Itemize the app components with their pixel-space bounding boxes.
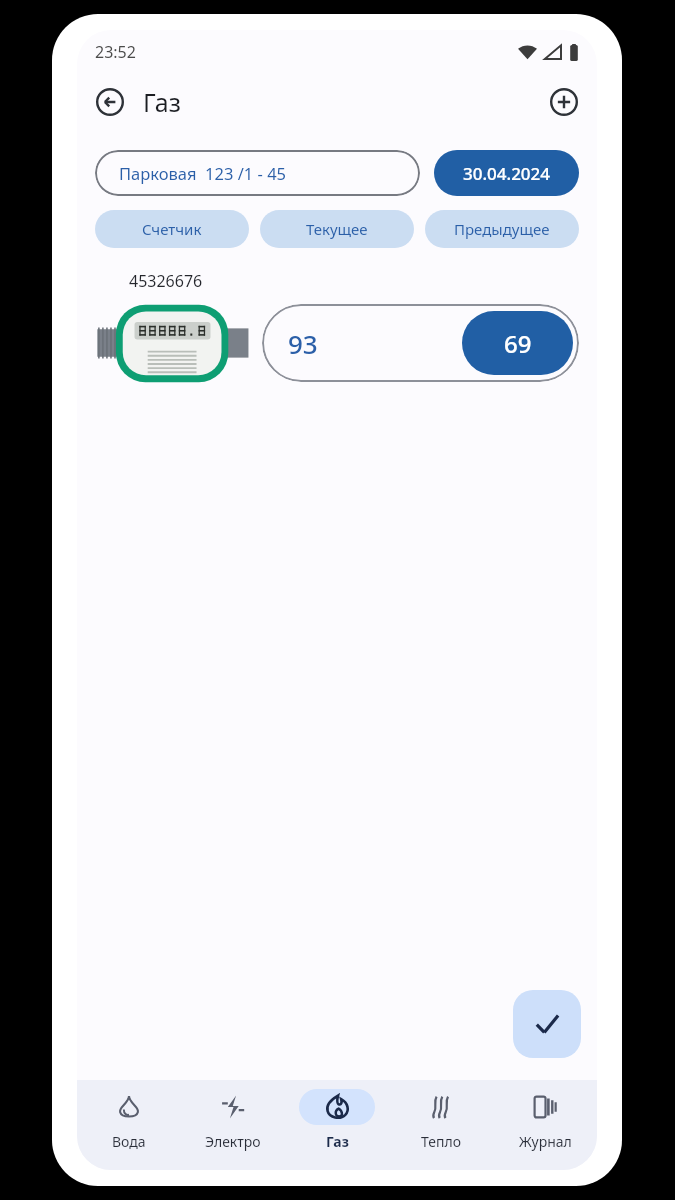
staticText: Тепло <box>421 1132 461 1151</box>
staticText: Счетчик <box>142 219 202 239</box>
staticText: Вода <box>112 1132 146 1151</box>
button[interactable]: 93 <box>262 304 579 382</box>
staticText: Предыдущее <box>454 219 550 239</box>
button[interactable]: Тепло <box>389 1080 493 1170</box>
staticText: 69 <box>504 327 532 360</box>
button[interactable]: Текущее <box>260 210 414 248</box>
button[interactable]: Счетчик <box>95 210 249 248</box>
staticText: 30.04.2024 <box>463 162 551 185</box>
button[interactable]: Подтвердить <box>513 990 581 1058</box>
staticText: Газ <box>143 85 181 119</box>
button[interactable]: Журнал <box>493 1080 597 1170</box>
staticText: Парковая 123 /1 - 45 <box>119 162 287 184</box>
button[interactable]: Парковая 123 /1 - 45 <box>95 150 420 196</box>
button[interactable]: Add <box>547 85 581 119</box>
button[interactable]: 30.04.2024 <box>434 150 579 196</box>
staticText: Электро <box>205 1132 261 1151</box>
button[interactable]: Электро <box>181 1080 285 1170</box>
staticText: 93 <box>288 326 318 361</box>
staticText: 23:52 <box>95 41 136 63</box>
button[interactable]: Счетчик газа <box>95 300 250 386</box>
staticText: Журнал <box>519 1132 572 1151</box>
button[interactable]: Вода <box>77 1080 181 1170</box>
button[interactable]: 69 <box>462 311 573 375</box>
staticText: 45326676 <box>129 270 203 292</box>
button[interactable]: Газ <box>285 1080 389 1170</box>
staticText: Текущее <box>306 219 368 239</box>
button[interactable]: Back <box>93 85 127 119</box>
button[interactable]: Предыдущее <box>425 210 579 248</box>
staticText: Газ <box>326 1132 349 1151</box>
